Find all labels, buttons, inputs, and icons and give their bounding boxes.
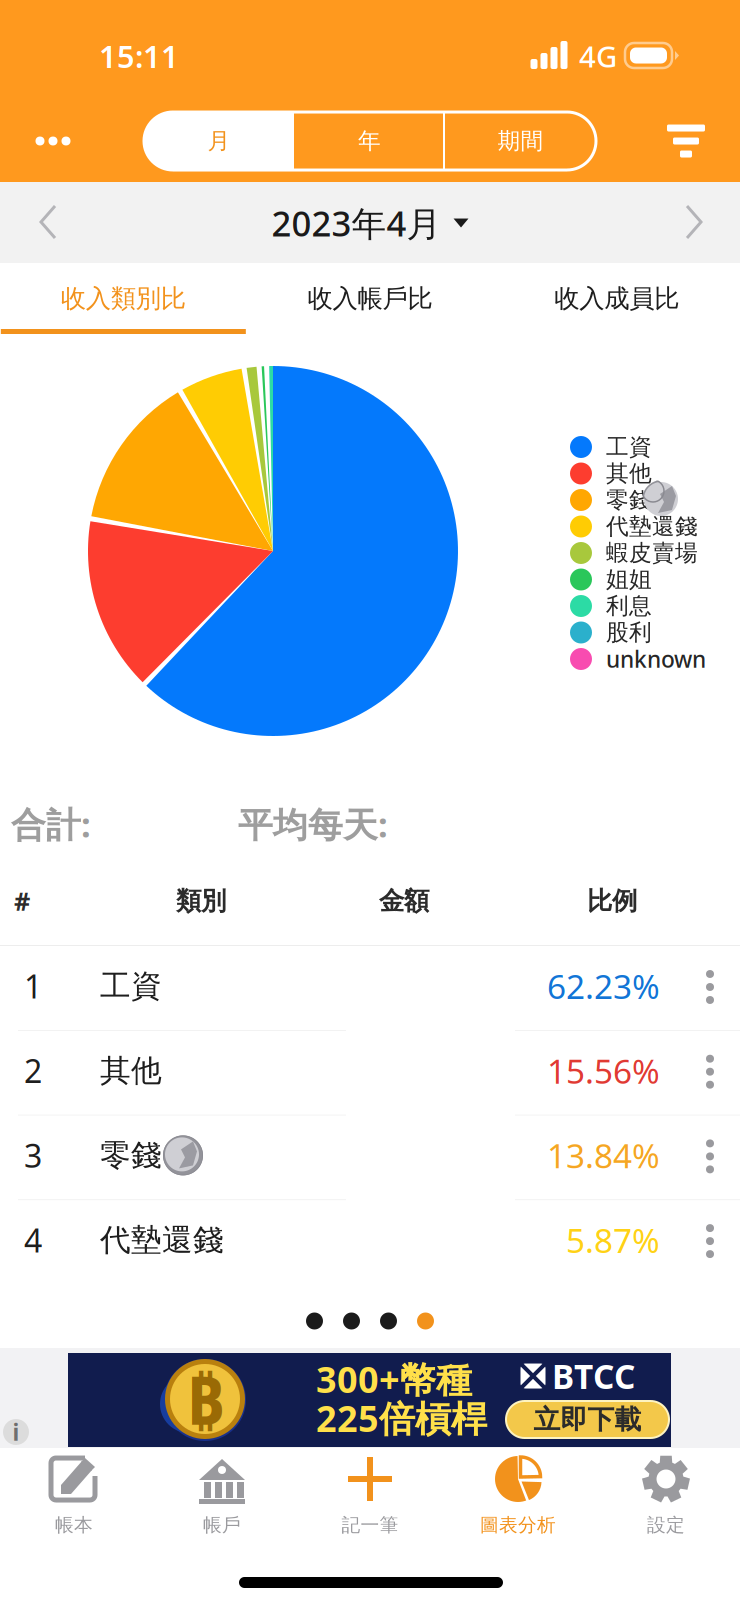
- staticText: 零錢: [606, 486, 652, 514]
- button[interactable]: 圖表分析: [444, 1448, 592, 1560]
- staticText: 代墊還錢: [100, 1221, 224, 1259]
- staticText: ₿: [186, 1355, 224, 1443]
- button[interactable]: Previous month: [8, 187, 88, 257]
- button[interactable]: 記一筆: [296, 1448, 444, 1560]
- staticText: 13.84%: [547, 1133, 660, 1178]
- staticText: 62.23%: [547, 964, 660, 1008]
- staticText: 股利: [606, 619, 652, 646]
- staticText: 期間: [497, 127, 543, 155]
- staticText: unknown: [606, 644, 706, 674]
- staticText: 圖表分析: [480, 1513, 556, 1536]
- button[interactable]: 收入成員比: [493, 263, 740, 334]
- staticText: 立即下載: [533, 1403, 641, 1436]
- button[interactable]: 2: [0, 1031, 740, 1115]
- staticText: 收入帳戶比: [307, 283, 432, 314]
- staticText: 其他: [100, 1052, 162, 1090]
- staticText: 年: [358, 127, 381, 155]
- staticText: 比例: [587, 885, 637, 916]
- button[interactable]: Next month: [654, 187, 734, 257]
- staticText: 收入類別比: [61, 283, 186, 314]
- staticText: 蝦皮賣場: [606, 539, 698, 567]
- staticText: 3: [24, 1134, 42, 1177]
- staticText: 平均每天:: [238, 801, 388, 847]
- button[interactable]: 帳本: [0, 1448, 148, 1560]
- staticText: 2023年4月: [271, 200, 441, 246]
- staticText: 其他: [606, 460, 652, 487]
- staticText: 帳本: [55, 1513, 93, 1536]
- staticText: BTCC: [552, 1354, 635, 1398]
- button[interactable]: 年: [294, 112, 445, 170]
- staticText: 4G: [579, 36, 617, 75]
- staticText: 300+幣種: [316, 1355, 472, 1403]
- button[interactable]: 月: [144, 112, 294, 170]
- staticText: 1: [24, 965, 42, 1007]
- button[interactable]: Filter: [646, 106, 726, 176]
- button[interactable]: More options: [10, 106, 96, 176]
- staticText: 收入成員比: [554, 283, 679, 314]
- staticText: 代墊還錢: [606, 513, 698, 540]
- staticText: 月: [207, 127, 230, 155]
- staticText: 合計:: [11, 801, 91, 847]
- button[interactable]: 期間: [445, 112, 596, 170]
- staticText: 零錢: [100, 1137, 162, 1174]
- button[interactable]: 2023年4月: [250, 200, 490, 246]
- button[interactable]: 設定: [592, 1448, 740, 1560]
- button[interactable]: 3: [0, 1115, 740, 1200]
- button[interactable]: 收入帳戶比: [247, 263, 493, 334]
- staticText: 工資: [100, 967, 162, 1005]
- staticText: 4: [24, 1219, 42, 1261]
- staticText: 姐姐: [606, 566, 652, 593]
- staticText: #: [14, 884, 30, 918]
- staticText: 15.56%: [547, 1049, 660, 1093]
- staticText: 225倍槓桿: [316, 1394, 487, 1442]
- staticText: 記一筆: [341, 1513, 398, 1536]
- button[interactable]: 4: [0, 1200, 740, 1285]
- staticText: 設定: [647, 1513, 685, 1536]
- staticText: 15:11: [99, 36, 179, 76]
- staticText: 5.87%: [566, 1218, 660, 1262]
- staticText: 利息: [606, 592, 652, 620]
- staticText: i: [12, 1417, 19, 1447]
- button[interactable]: Advertisement: [68, 1353, 671, 1447]
- staticText: 類別: [176, 885, 226, 916]
- button[interactable]: 收入類別比: [0, 263, 247, 334]
- staticText: 工資: [606, 433, 652, 461]
- staticText: 帳戶: [203, 1513, 241, 1536]
- staticText: 2: [24, 1049, 42, 1092]
- staticText: 金額: [379, 885, 429, 916]
- button[interactable]: 帳戶: [148, 1448, 296, 1560]
- button[interactable]: 1: [0, 946, 740, 1031]
